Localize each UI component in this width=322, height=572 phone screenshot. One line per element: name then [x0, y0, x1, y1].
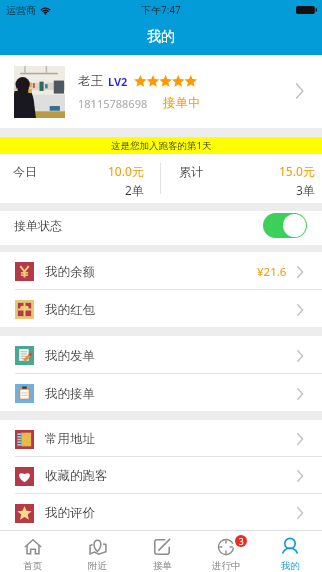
- staticText: 我的发单: [45, 348, 95, 364]
- staticText: 我的: [147, 28, 175, 46]
- staticText: 15.0元: [279, 163, 315, 179]
- staticText: 老王: [78, 73, 103, 89]
- button[interactable]: 进行中: [194, 531, 258, 572]
- staticText: 我的接单: [45, 386, 95, 402]
- button[interactable]: 老王: [0, 55, 322, 128]
- staticText: 我的余额: [45, 264, 95, 280]
- staticText: 2单: [125, 182, 144, 198]
- staticText: 我的: [281, 560, 300, 572]
- button[interactable]: 首页: [0, 531, 65, 572]
- staticText: 我的评价: [45, 505, 95, 521]
- staticText: 接单中: [163, 95, 201, 111]
- staticText: 接单状态: [14, 218, 62, 233]
- staticText: 3: [239, 536, 244, 547]
- button[interactable]: 接单: [130, 531, 194, 572]
- staticText: 18115788698: [78, 96, 148, 111]
- button[interactable]: 接单状态: [0, 211, 322, 245]
- staticText: 常用地址: [45, 431, 95, 447]
- staticText: 进行中: [212, 560, 241, 572]
- button[interactable]: 收藏的跑客: [0, 457, 322, 494]
- button[interactable]: 常用地址: [0, 420, 322, 457]
- staticText: 首页: [23, 560, 42, 572]
- staticText: 今日: [13, 164, 37, 179]
- staticText: ¥21.6: [257, 264, 287, 280]
- button[interactable]: 我的接单: [0, 374, 322, 411]
- button[interactable]: 附近: [65, 531, 130, 572]
- staticText: 下午7:47: [141, 3, 181, 17]
- staticText: 收藏的跑客: [45, 468, 108, 484]
- staticText: LV2: [108, 74, 128, 89]
- staticText: 10.0元: [108, 163, 144, 179]
- staticText: 3单: [296, 182, 315, 198]
- button[interactable]: 我的发单: [0, 336, 322, 374]
- staticText: 附近: [88, 560, 107, 572]
- button[interactable]: 我的红包: [0, 290, 322, 327]
- button[interactable]: 我的评价: [0, 494, 322, 530]
- staticText: 运营商: [6, 4, 36, 17]
- button[interactable]: 我的余额: [0, 252, 322, 290]
- staticText: 累计: [179, 164, 203, 179]
- staticText: 接单: [153, 560, 172, 572]
- button[interactable]: 我的: [258, 531, 322, 572]
- button[interactable]: 接单状态开关: [263, 213, 307, 238]
- staticText: 我的红包: [45, 302, 95, 318]
- staticText: 这是您加入跑客的第1天: [111, 139, 212, 152]
